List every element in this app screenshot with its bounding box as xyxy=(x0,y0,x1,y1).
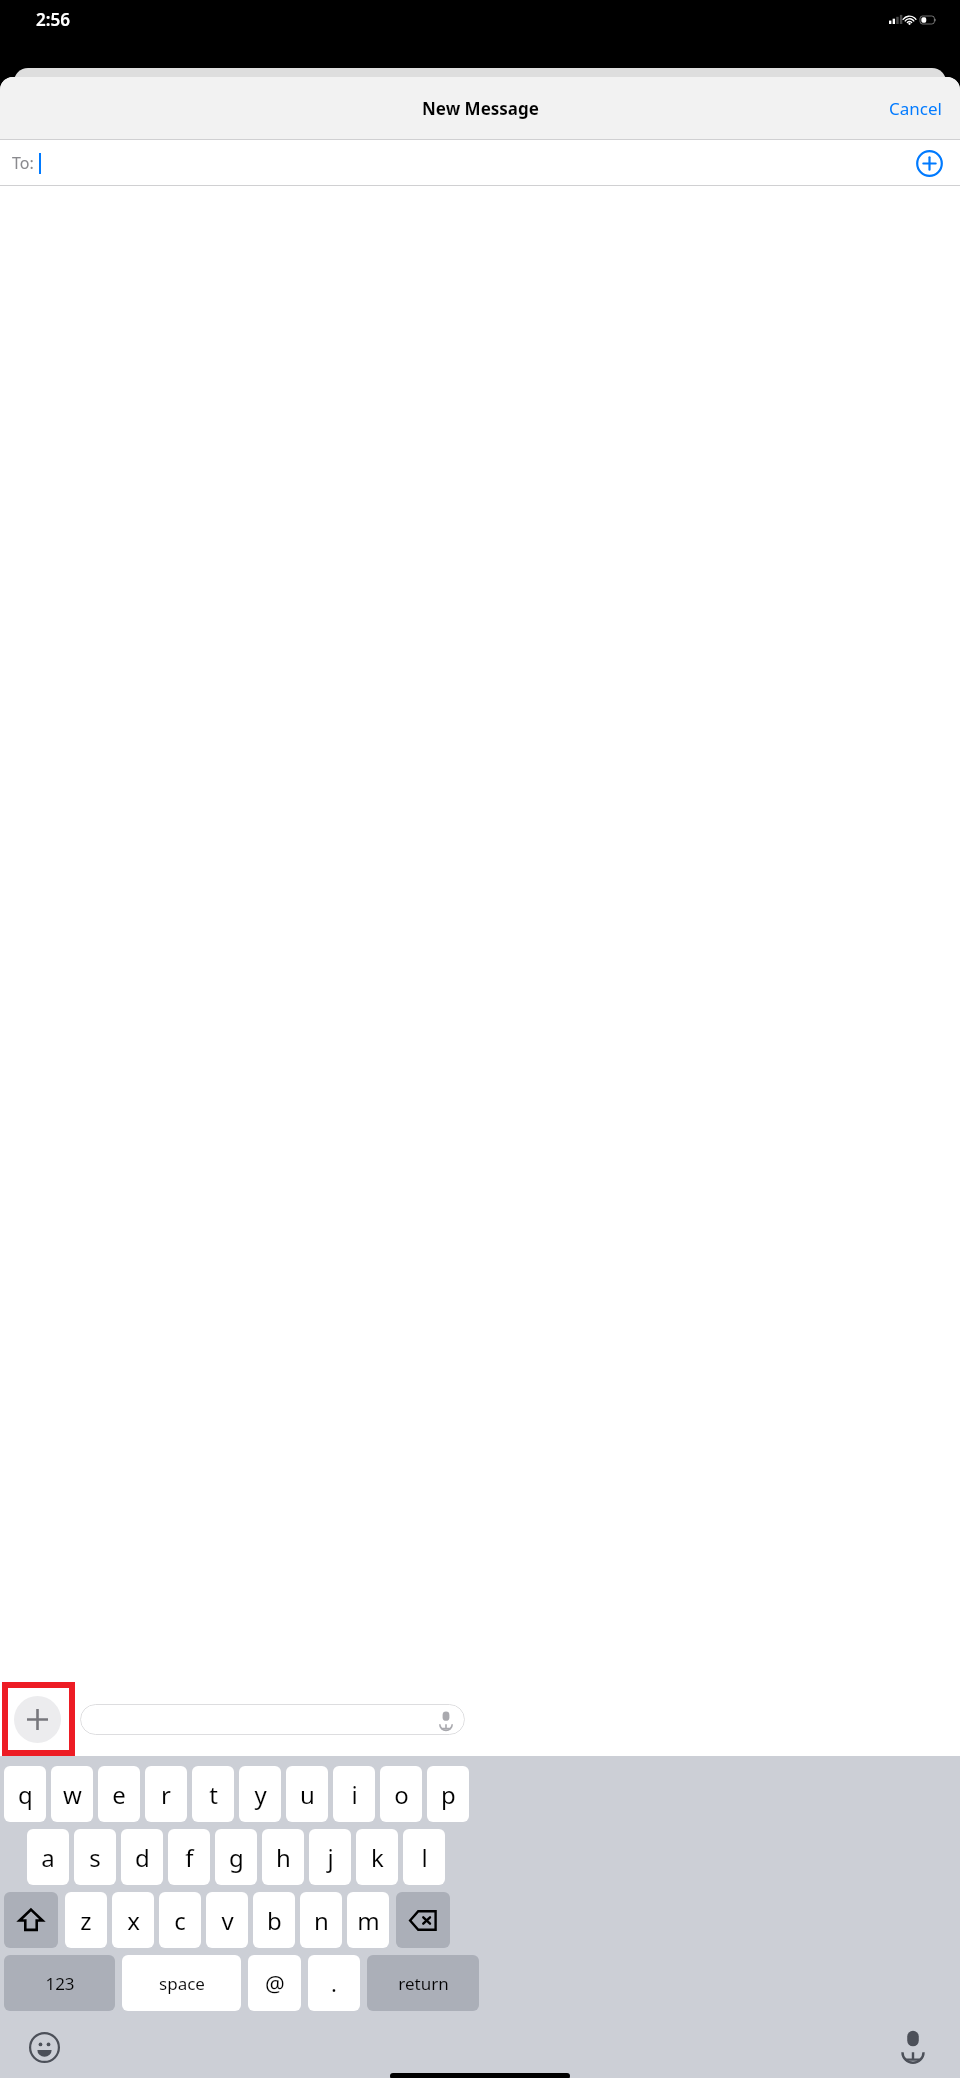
staticText: . xyxy=(331,1968,337,1998)
staticText: v xyxy=(221,1904,234,1937)
button[interactable]: e xyxy=(98,1766,140,1822)
staticText: q xyxy=(18,1778,33,1811)
button[interactable]: y xyxy=(239,1766,281,1822)
staticText: b xyxy=(267,1904,282,1937)
button[interactable]: Dictate xyxy=(80,1704,465,1735)
staticText: e xyxy=(112,1778,126,1811)
button[interactable]: 123 xyxy=(4,1955,115,2011)
button[interactable]: Delete xyxy=(396,1892,450,1948)
button[interactable]: q xyxy=(4,1766,46,1822)
staticText: j xyxy=(327,1841,334,1874)
button[interactable]: r xyxy=(145,1766,187,1822)
staticText: z xyxy=(80,1904,92,1937)
staticText: r xyxy=(161,1778,171,1811)
staticText: 2:56 xyxy=(36,8,70,31)
staticText: p xyxy=(441,1778,456,1811)
staticText: a xyxy=(41,1841,55,1874)
button[interactable]: h xyxy=(262,1829,304,1885)
staticText: d xyxy=(135,1841,150,1874)
button[interactable]: Dictation xyxy=(896,2028,930,2062)
staticText: To: xyxy=(12,152,34,174)
button[interactable]: o xyxy=(380,1766,422,1822)
button[interactable]: return xyxy=(367,1955,479,2011)
button[interactable]: Add contact xyxy=(914,148,944,178)
staticText: s xyxy=(89,1841,101,1874)
button[interactable]: u xyxy=(286,1766,328,1822)
button[interactable]: p xyxy=(427,1766,469,1822)
button[interactable]: j xyxy=(309,1829,351,1885)
button[interactable]: b xyxy=(253,1892,295,1948)
staticText: x xyxy=(127,1904,140,1937)
staticText: f xyxy=(185,1841,194,1874)
staticText: k xyxy=(371,1841,384,1874)
button[interactable]: v xyxy=(206,1892,248,1948)
button[interactable]: Add attachment xyxy=(14,1696,61,1743)
staticText: h xyxy=(276,1841,291,1874)
staticText: return xyxy=(398,1972,449,1995)
staticText: 123 xyxy=(45,1972,75,1995)
staticText: l xyxy=(421,1841,428,1874)
staticText: m xyxy=(357,1904,380,1937)
staticText: Cancel xyxy=(889,97,942,120)
staticText: y xyxy=(254,1778,267,1811)
button[interactable]: l xyxy=(403,1829,445,1885)
staticText: i xyxy=(351,1778,358,1811)
button[interactable]: Emoji xyxy=(26,2029,62,2065)
button[interactable]: Shift xyxy=(4,1892,58,1948)
button[interactable]: d xyxy=(121,1829,163,1885)
button[interactable]: t xyxy=(192,1766,234,1822)
staticText: t xyxy=(209,1778,218,1811)
other: Dictate xyxy=(436,1710,456,1730)
button[interactable]: k xyxy=(356,1829,398,1885)
staticText: n xyxy=(314,1904,329,1937)
button[interactable]: @ xyxy=(248,1955,301,2011)
button[interactable]: m xyxy=(347,1892,389,1948)
button[interactable]: s xyxy=(74,1829,116,1885)
button[interactable]: i xyxy=(333,1766,375,1822)
staticText: o xyxy=(394,1778,409,1811)
button[interactable]: z xyxy=(65,1892,107,1948)
staticText: u xyxy=(300,1778,315,1811)
staticText: New Message xyxy=(422,97,539,120)
button[interactable]: x xyxy=(112,1892,154,1948)
button[interactable]: f xyxy=(168,1829,210,1885)
button[interactable]: g xyxy=(215,1829,257,1885)
button[interactable]: n xyxy=(300,1892,342,1948)
button[interactable]: w xyxy=(51,1766,93,1822)
button[interactable]: space xyxy=(122,1955,241,2011)
button[interactable]: Cancel xyxy=(871,87,960,130)
staticText: g xyxy=(229,1841,244,1874)
staticText: space xyxy=(159,1972,205,1995)
staticText: w xyxy=(63,1778,82,1811)
button[interactable]: . xyxy=(308,1955,360,2011)
staticText: c xyxy=(174,1904,186,1937)
staticText: @ xyxy=(265,1968,285,1998)
button[interactable]: c xyxy=(159,1892,201,1948)
button[interactable]: a xyxy=(27,1829,69,1885)
